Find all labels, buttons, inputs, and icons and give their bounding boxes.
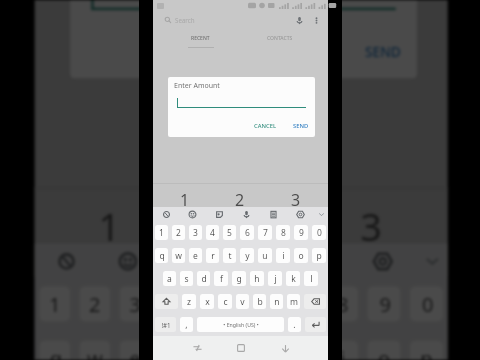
button[interactable]: z (182, 294, 196, 309)
button[interactable]: t (223, 248, 236, 263)
button[interactable]: k (286, 271, 300, 286)
button[interactable]: Translate (35, 244, 96, 277)
button[interactable]: SEND (291, 120, 311, 132)
button[interactable]: y (240, 340, 273, 360)
button[interactable]: Voice search (293, 14, 306, 27)
button[interactable]: o (367, 340, 400, 360)
button[interactable]: x (200, 294, 214, 309)
button[interactable]: Settings (351, 244, 415, 277)
staticText: i (282, 250, 285, 262)
button[interactable]: Translate (153, 207, 179, 221)
button[interactable]: 0 (410, 286, 443, 322)
button[interactable]: 8 (276, 225, 290, 240)
button[interactable]: 1 (155, 225, 168, 240)
button[interactable]: CANCEL (252, 120, 278, 132)
button[interactable]: o (294, 248, 308, 263)
button[interactable]: Close keyboard (272, 336, 298, 360)
button[interactable]: Emoji (179, 207, 206, 221)
button[interactable]: v (236, 294, 249, 309)
button[interactable]: i (325, 340, 358, 360)
button[interactable]: e (189, 248, 202, 263)
staticText: f (220, 273, 223, 285)
button[interactable]: 5 (223, 225, 236, 240)
button[interactable]: Recents (184, 336, 210, 360)
button[interactable]: q (155, 248, 168, 263)
button[interactable]: Collapse toolbar (415, 244, 448, 277)
button[interactable]: More options (310, 14, 323, 27)
button[interactable]: w (79, 340, 110, 360)
button[interactable]: i (276, 248, 290, 263)
button[interactable]: CANCEL (268, 38, 330, 67)
button[interactable]: Voice input (223, 244, 287, 277)
button[interactable]: w (172, 248, 185, 263)
button[interactable]: 3 (268, 184, 324, 207)
button[interactable]: CONTACTS (240, 29, 320, 48)
button[interactable]: Collapse toolbar (314, 207, 328, 221)
staticText: 0 (317, 227, 322, 239)
button[interactable]: 4 (160, 286, 190, 322)
button[interactable]: • English (US) • (197, 317, 284, 332)
button[interactable]: m (287, 294, 300, 309)
button[interactable]: Stickers (160, 244, 223, 277)
button[interactable]: 1 (44, 189, 174, 244)
button[interactable]: d (197, 271, 210, 286)
button[interactable]: 7 (282, 286, 315, 322)
button[interactable]: 4 (206, 225, 219, 240)
button[interactable]: SEND (360, 38, 408, 67)
button[interactable]: 6 (240, 225, 254, 240)
staticText: e (129, 345, 141, 360)
button[interactable]: 0 (312, 225, 326, 240)
button[interactable]: Settings (287, 207, 314, 221)
button[interactable]: 7 (258, 225, 272, 240)
button[interactable]: !#1 (155, 317, 176, 332)
button[interactable]: Clipboard (260, 207, 287, 221)
button[interactable]: Emoji (96, 244, 160, 277)
staticText: 4 (210, 227, 215, 239)
button[interactable]: s (180, 271, 193, 286)
button[interactable]: p (312, 248, 326, 263)
button[interactable]: 9 (367, 286, 400, 322)
button[interactable]: Stickers (206, 207, 233, 221)
button[interactable]: Backspace (304, 294, 326, 309)
button[interactable]: Enter (305, 317, 326, 332)
button[interactable]: q (39, 340, 70, 360)
button[interactable]: r (206, 248, 219, 263)
button[interactable]: Voice input (233, 207, 260, 221)
button[interactable]: Home (228, 336, 254, 360)
button[interactable]: e (120, 340, 150, 360)
button[interactable]: g (232, 271, 246, 286)
button[interactable]: l (304, 271, 318, 286)
staticText: c (223, 296, 228, 308)
button[interactable]: 8 (325, 286, 358, 322)
button[interactable]: 2 (79, 286, 110, 322)
button[interactable]: a (163, 271, 176, 286)
button[interactable]: 1 (157, 184, 212, 207)
button[interactable]: 2 (172, 225, 185, 240)
button[interactable]: j (268, 271, 282, 286)
button[interactable]: p (410, 340, 443, 360)
button[interactable]: 2 (212, 184, 268, 207)
button[interactable]: 2 (174, 189, 306, 244)
button[interactable]: u (258, 248, 272, 263)
button[interactable]: 3 (306, 189, 438, 244)
button[interactable]: Shift (155, 294, 178, 309)
button[interactable]: 9 (294, 225, 308, 240)
button[interactable]: 1 (39, 286, 70, 322)
button[interactable]: y (240, 248, 254, 263)
button[interactable]: 3 (189, 225, 202, 240)
button[interactable]: h (250, 271, 264, 286)
button[interactable]: u (282, 340, 315, 360)
button[interactable]: c (218, 294, 232, 309)
button[interactable]: . (288, 317, 301, 332)
button[interactable]: n (270, 294, 283, 309)
button[interactable]: RECENT (161, 29, 240, 48)
button[interactable]: f (214, 271, 228, 286)
button[interactable]: 3 (120, 286, 150, 322)
button[interactable]: Clipboard (287, 244, 351, 277)
button[interactable]: 5 (200, 286, 231, 322)
button[interactable]: 6 (240, 286, 273, 322)
button[interactable]: b (253, 294, 266, 309)
button[interactable]: , (180, 317, 193, 332)
